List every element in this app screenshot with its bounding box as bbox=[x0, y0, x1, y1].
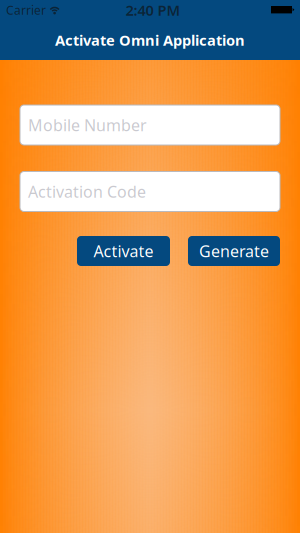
staticText: Mobile Number bbox=[28, 114, 147, 136]
button[interactable]: Activation Code bbox=[20, 171, 280, 211]
staticText: Generate bbox=[199, 240, 269, 262]
staticText: Activation Code bbox=[28, 181, 146, 202]
button[interactable]: Activate bbox=[77, 236, 170, 266]
staticText: 2:40 PM bbox=[125, 0, 180, 20]
button[interactable]: Mobile Number bbox=[20, 105, 280, 145]
staticText: Activate bbox=[93, 240, 153, 262]
staticText: Activate Omni Application bbox=[55, 30, 245, 50]
button[interactable]: Generate bbox=[188, 236, 280, 266]
staticText: Carrier bbox=[6, 2, 46, 18]
